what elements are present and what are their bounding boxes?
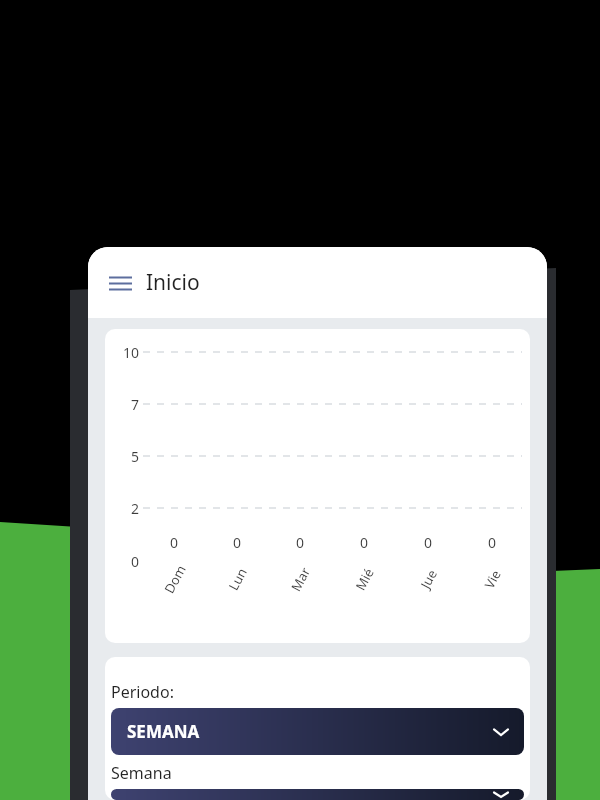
staticText: 0 [170, 533, 179, 552]
staticText: 0 [296, 533, 305, 552]
staticText: 0 [360, 533, 369, 552]
button[interactable]: Menu [98, 261, 142, 305]
staticText: 0 [130, 552, 139, 571]
staticText: Jue [416, 566, 441, 592]
staticText: 10 [122, 343, 139, 362]
button[interactable]: SEMANA [111, 708, 524, 755]
staticText: Inicio [146, 268, 200, 297]
button[interactable] [111, 789, 524, 800]
staticText: Dom [160, 561, 190, 596]
staticText: Vie [480, 566, 505, 592]
staticText: 0 [233, 533, 242, 552]
staticText: Semana [111, 762, 172, 784]
staticText: 0 [424, 533, 433, 552]
staticText: Lun [224, 565, 251, 593]
staticText: 0 [488, 533, 497, 552]
staticText: Mar [287, 564, 314, 594]
staticText: Mié [351, 565, 378, 593]
staticText: 7 [130, 395, 139, 414]
staticText: Periodo: [111, 681, 174, 703]
staticText: SEMANA [127, 720, 200, 743]
staticText: 2 [130, 499, 139, 518]
staticText: 5 [130, 447, 139, 466]
